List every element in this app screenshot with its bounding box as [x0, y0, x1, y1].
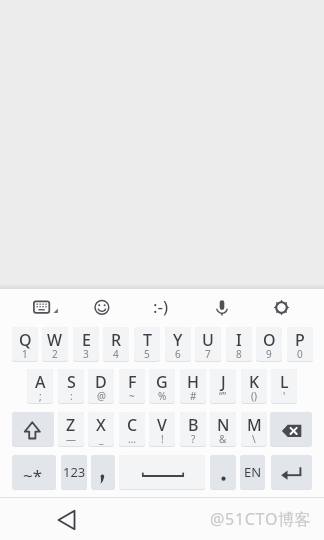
staticText: 5: [144, 347, 150, 361]
button[interactable]: [12, 412, 54, 447]
staticText: ~*: [23, 464, 43, 487]
staticText: H: [187, 371, 199, 393]
staticText: J: [221, 371, 226, 393]
staticText: :: [70, 389, 73, 403]
staticText: _: [99, 432, 104, 446]
staticText: (): [251, 389, 257, 403]
staticText: N: [217, 414, 230, 436]
staticText: S: [67, 371, 76, 393]
button[interactable]: [270, 412, 312, 447]
staticText: A: [35, 371, 46, 393]
button[interactable]: E: [73, 327, 99, 362]
staticText: “”: [219, 389, 227, 403]
button[interactable]: P: [287, 327, 313, 362]
staticText: F: [128, 371, 137, 393]
button[interactable]: [199, 289, 239, 324]
button[interactable]: G: [149, 369, 175, 404]
staticText: ;: [39, 389, 42, 403]
button[interactable]: [28, 289, 68, 324]
button[interactable]: J: [210, 369, 236, 404]
button[interactable]: S: [58, 369, 84, 404]
staticText: 9: [266, 347, 272, 361]
staticText: T: [143, 329, 152, 351]
staticText: Z: [66, 414, 76, 436]
staticText: ': [283, 389, 286, 403]
staticText: P: [295, 329, 305, 351]
button[interactable]: [210, 455, 236, 490]
button[interactable]: ~*: [12, 455, 56, 490]
staticText: Q: [19, 329, 32, 351]
staticText: X: [96, 414, 106, 436]
staticText: 7: [205, 347, 211, 361]
staticText: L: [280, 371, 289, 393]
button[interactable]: Q: [12, 327, 38, 362]
button[interactable]: U: [195, 327, 221, 362]
staticText: @51CTO博客: [210, 508, 312, 530]
button[interactable]: N: [210, 412, 236, 447]
staticText: U: [202, 329, 214, 351]
button[interactable]: L: [271, 369, 297, 404]
staticText: V: [157, 414, 167, 436]
staticText: Y: [173, 329, 183, 351]
button[interactable]: [119, 455, 205, 490]
staticText: EN: [244, 463, 262, 481]
button[interactable]: F: [119, 369, 145, 404]
button[interactable]: B: [180, 412, 206, 447]
button[interactable]: Z: [58, 412, 84, 447]
staticText: 2: [52, 347, 58, 361]
staticText: C: [127, 414, 138, 436]
button[interactable]: R: [103, 327, 129, 362]
staticText: 0: [297, 347, 303, 361]
staticText: @: [97, 389, 106, 403]
staticText: I: [236, 329, 242, 351]
button[interactable]: T: [134, 327, 160, 362]
staticText: M: [247, 414, 262, 436]
button[interactable]: A: [27, 369, 53, 404]
staticText: #: [190, 389, 197, 403]
staticText: R: [111, 329, 122, 351]
button[interactable]: I: [226, 327, 252, 362]
button[interactable]: W: [42, 327, 68, 362]
staticText: B: [188, 414, 199, 436]
staticText: ?: [191, 432, 196, 446]
staticText: \: [252, 432, 256, 446]
button[interactable]: D: [88, 369, 114, 404]
staticText: O: [263, 329, 276, 351]
button[interactable]: [85, 289, 125, 324]
button[interactable]: O: [256, 327, 282, 362]
button[interactable]: M: [241, 412, 267, 447]
staticText: %: [158, 389, 167, 403]
staticText: &: [219, 432, 227, 446]
staticText: 8: [236, 347, 242, 361]
button[interactable]: C: [119, 412, 145, 447]
staticText: 3: [83, 347, 89, 361]
button[interactable]: H: [180, 369, 206, 404]
staticText: ~: [129, 389, 135, 403]
button[interactable]: [46, 500, 86, 540]
button[interactable]: [91, 455, 115, 490]
staticText: G: [156, 371, 168, 393]
button[interactable]: [261, 289, 301, 324]
button[interactable]: K: [241, 369, 267, 404]
button[interactable]: EN: [240, 455, 265, 490]
staticText: 1: [22, 347, 28, 361]
staticText: K: [249, 371, 260, 393]
staticText: E: [82, 329, 91, 351]
staticText: …: [128, 432, 136, 446]
staticText: !: [161, 432, 164, 446]
button[interactable]: [141, 289, 181, 324]
button[interactable]: X: [88, 412, 114, 447]
button[interactable]: [271, 455, 312, 490]
staticText: :-): [153, 295, 169, 318]
staticText: 4: [113, 347, 119, 361]
button[interactable]: Y: [165, 327, 191, 362]
button[interactable]: 123: [61, 455, 87, 490]
staticText: 6: [175, 347, 181, 361]
button[interactable]: V: [149, 412, 175, 447]
staticText: D: [95, 371, 107, 393]
staticText: 123: [63, 463, 86, 481]
staticText: W: [47, 329, 63, 351]
staticText: —: [66, 432, 76, 446]
